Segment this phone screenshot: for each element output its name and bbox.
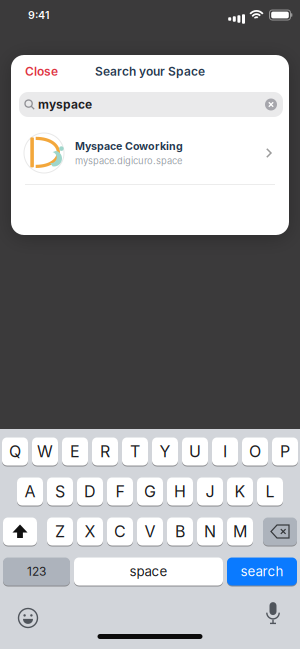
staticText: myspace.digicuro.space (75, 155, 182, 166)
staticText: J (205, 482, 214, 501)
staticText: M (233, 522, 247, 541)
staticText: myspace (38, 97, 92, 112)
button[interactable]: P (272, 437, 298, 466)
button[interactable]: search (227, 557, 297, 586)
button[interactable]: L (257, 477, 283, 506)
staticText: Z (55, 522, 65, 541)
button[interactable]: Myspace Coworking (11, 117, 289, 184)
button[interactable]: G (137, 477, 163, 506)
button[interactable]: Delete (263, 517, 297, 546)
button[interactable]: J (197, 477, 223, 506)
staticText: Close (25, 64, 58, 79)
staticText: 123 (27, 564, 46, 579)
button[interactable]: E (62, 437, 88, 466)
staticText: Q (9, 442, 21, 461)
button[interactable]: F (107, 477, 133, 506)
staticText: W (37, 442, 53, 461)
staticText: A (24, 482, 35, 501)
staticText: Y (159, 442, 170, 461)
button[interactable]: S (47, 477, 73, 506)
staticText: B (175, 522, 185, 541)
button[interactable]: O (242, 437, 268, 466)
button[interactable]: U (182, 437, 208, 466)
button[interactable]: W (32, 437, 58, 466)
staticText: I (223, 442, 227, 461)
staticText: E (70, 442, 80, 461)
staticText: R (100, 442, 110, 461)
button[interactable]: I (212, 437, 238, 466)
button[interactable]: K (227, 477, 253, 506)
staticText: 9:41 (28, 9, 50, 21)
button[interactable]: Q (2, 437, 28, 466)
button[interactable]: A (17, 477, 43, 506)
button[interactable]: Z (47, 517, 73, 546)
button[interactable]: Clear text (265, 98, 283, 110)
button[interactable]: V (137, 517, 163, 546)
button[interactable]: 123 (3, 557, 70, 586)
staticText: D (84, 482, 96, 501)
staticText: O (249, 442, 261, 461)
staticText: search (240, 564, 283, 579)
button[interactable]: Shift (3, 517, 37, 546)
button[interactable]: X (77, 517, 103, 546)
button[interactable]: Emoji (0, 608, 38, 628)
staticText: G (144, 482, 156, 501)
staticText: L (265, 482, 274, 501)
staticText: F (115, 482, 124, 501)
staticText: U (189, 442, 201, 461)
button[interactable]: Close (11, 64, 58, 79)
button[interactable]: M (227, 517, 253, 546)
staticText: N (204, 522, 216, 541)
button[interactable]: N (197, 517, 223, 546)
button[interactable]: Y (152, 437, 178, 466)
staticText: K (234, 482, 245, 501)
button[interactable]: R (92, 437, 118, 466)
staticText: X (84, 522, 95, 541)
button[interactable]: T (122, 437, 148, 466)
staticText: P (280, 442, 290, 461)
button[interactable]: H (167, 477, 193, 506)
staticText: space (129, 564, 167, 579)
staticText: T (130, 442, 140, 461)
staticText: Search your Space (95, 64, 205, 79)
button[interactable]: Search field (11, 88, 289, 117)
staticText: C (114, 522, 126, 541)
staticText: H (174, 482, 186, 501)
button[interactable]: C (107, 517, 133, 546)
button[interactable]: space (74, 557, 223, 586)
staticText: Myspace Coworking (75, 140, 183, 152)
button[interactable]: B (167, 517, 193, 546)
staticText: V (144, 522, 155, 541)
button[interactable]: Dictate (266, 602, 300, 624)
staticText: S (55, 482, 65, 501)
button[interactable]: D (77, 477, 103, 506)
